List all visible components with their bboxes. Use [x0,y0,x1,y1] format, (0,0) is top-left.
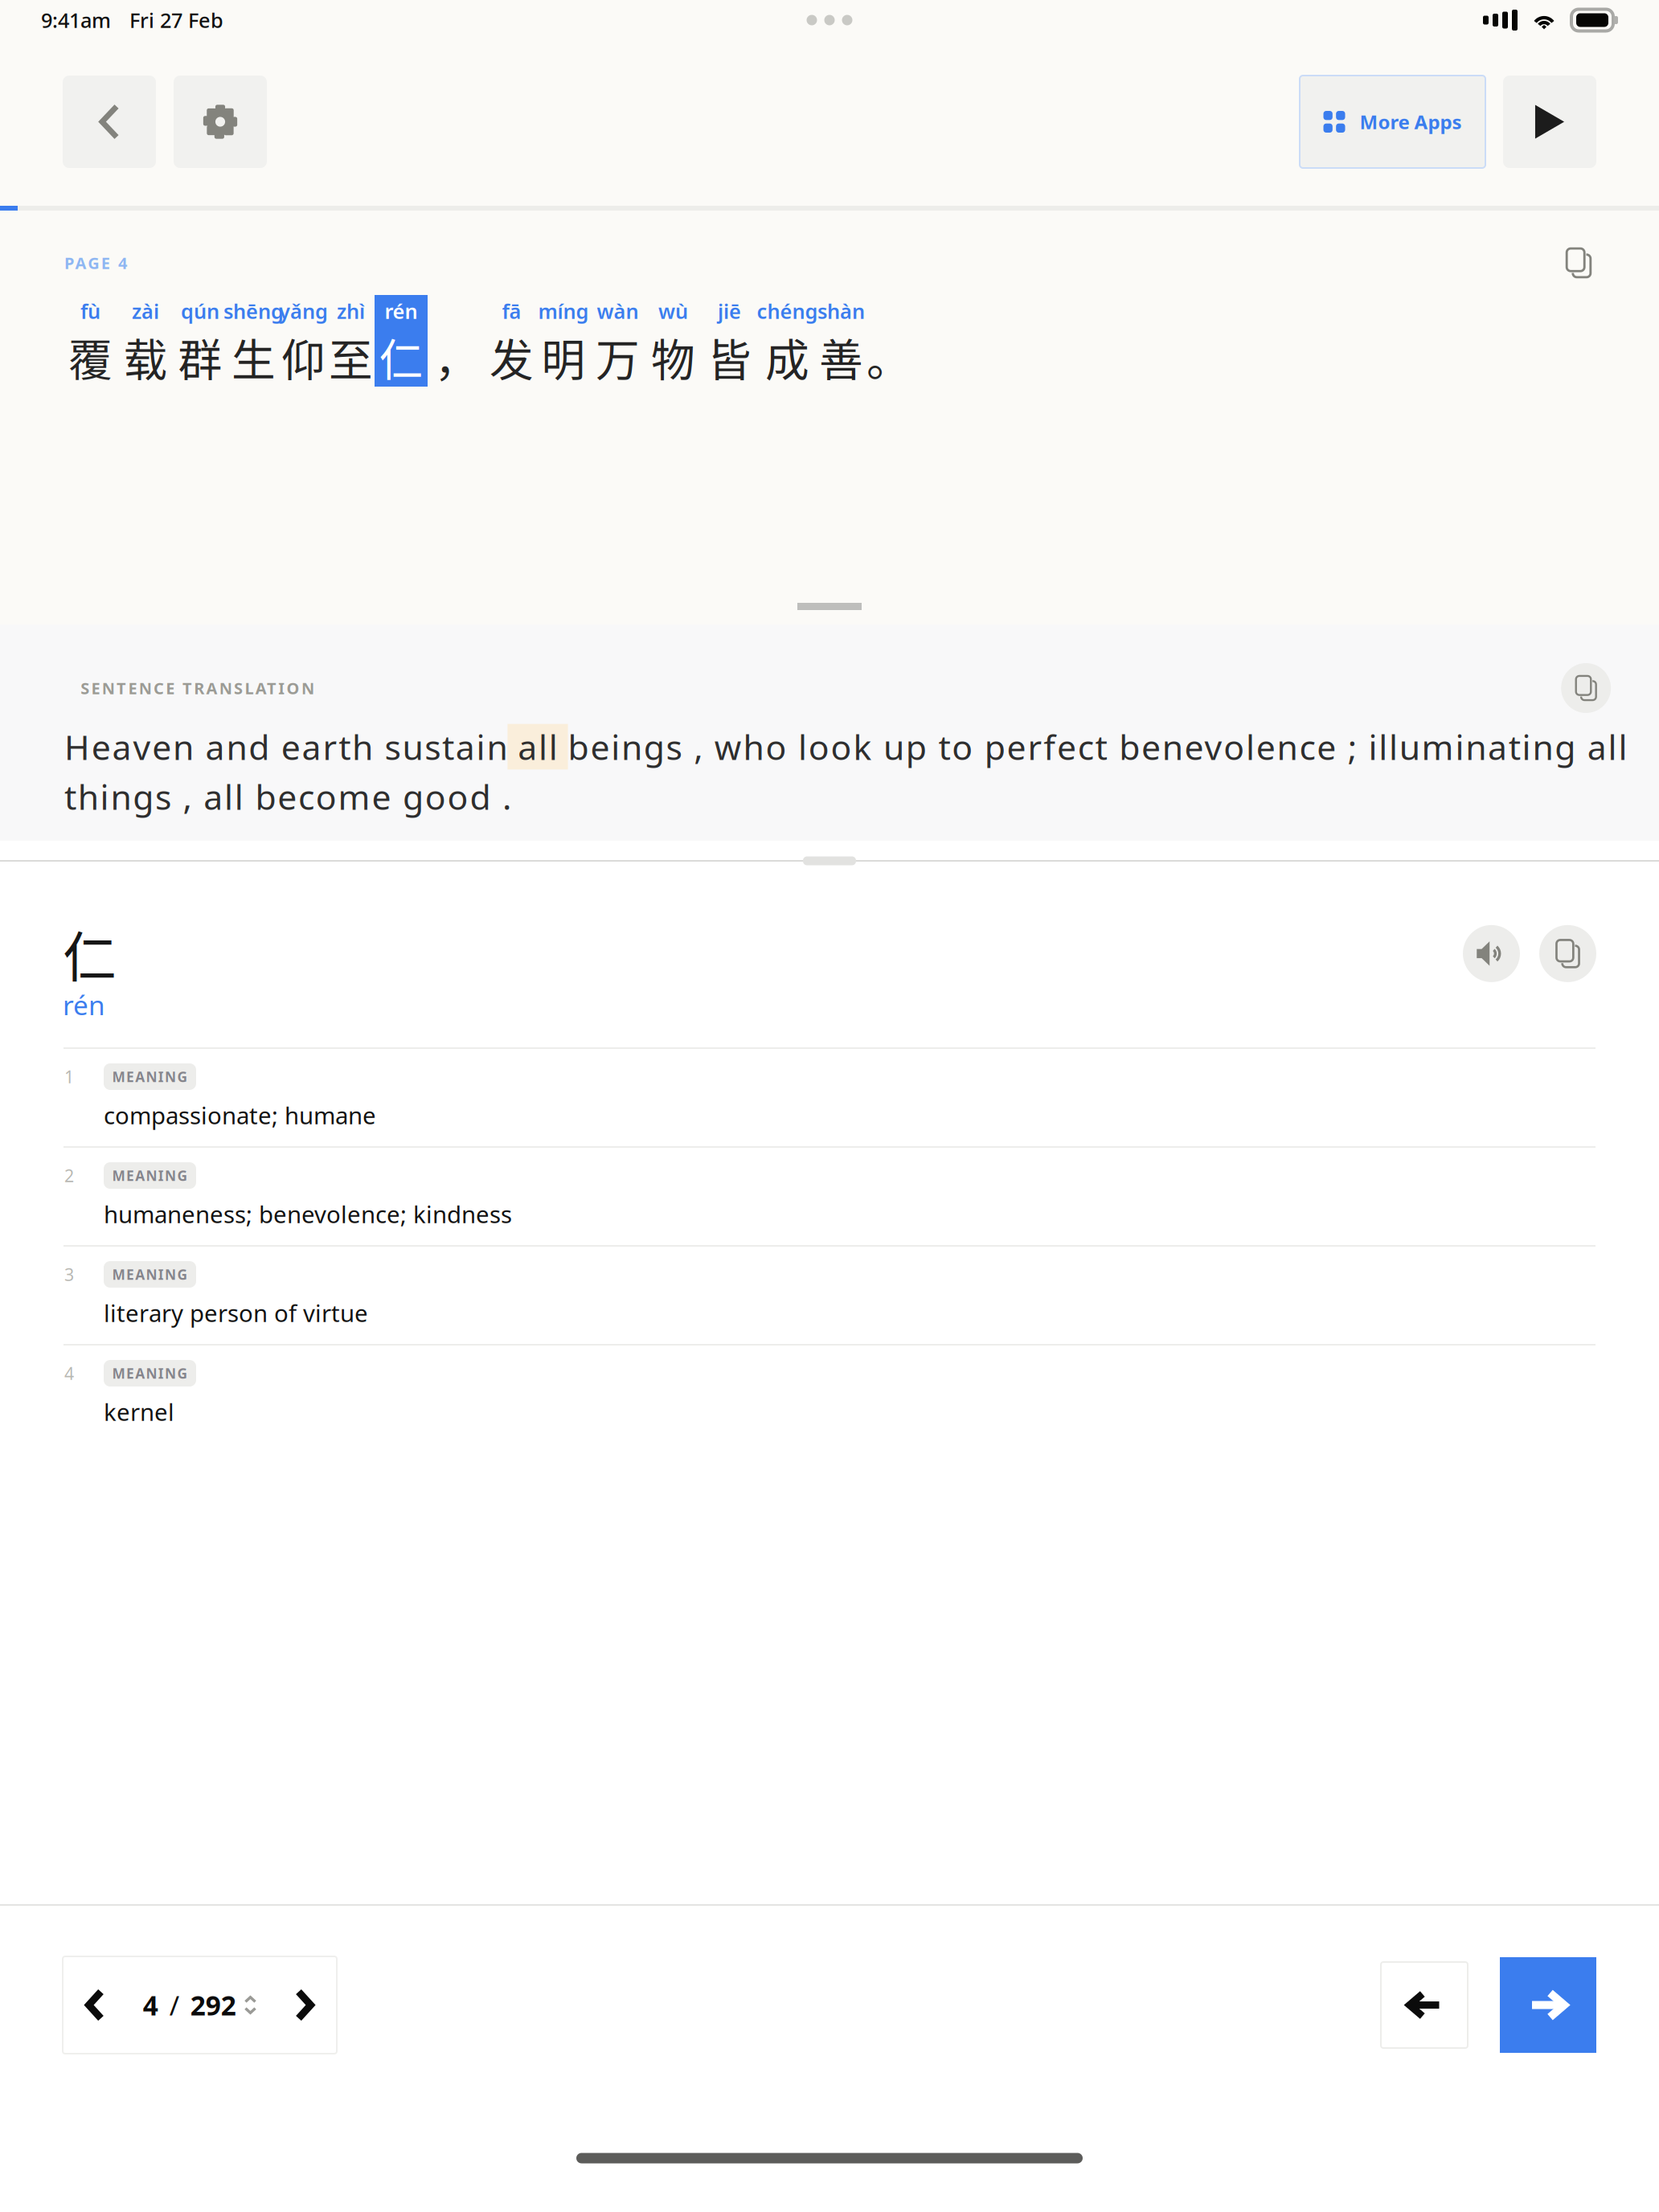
staticText: beings , who look up to perfect benevole… [568,724,1627,770]
staticText: yǎng [279,298,328,325]
staticText: 仁 [379,325,423,389]
staticText: zài [132,298,159,325]
staticText: jiē [718,298,741,325]
staticText: MEANING [112,1265,188,1284]
staticText: literary person of virtue [104,1297,368,1329]
staticText: 。 [866,325,911,389]
staticText: 生 [231,325,276,389]
staticText: shēng [223,298,284,325]
button[interactable]: Play [1503,76,1596,168]
staticText: 9:41am [41,7,111,34]
staticText: shàn [817,298,865,325]
staticText: MEANING [112,1067,188,1086]
staticText: míng [538,298,589,325]
staticText: SENTENCE TRANSLATION [81,677,314,699]
staticText: rén [385,298,418,325]
button[interactable]: Previous [1381,1962,1468,2048]
staticText: 仰 [281,325,326,389]
button[interactable]: Play pronunciation [1463,925,1520,982]
button[interactable]: More Apps [1300,76,1485,168]
staticText: fù [80,298,100,325]
button[interactable]: Back [63,76,156,168]
staticText: Heaven and earth sustain [64,724,508,770]
staticText: More Apps [1360,109,1462,135]
staticText: wù [658,298,688,325]
staticText: 明 [541,325,586,389]
staticText: 发 [490,325,534,389]
staticText: 万 [596,325,640,389]
staticText: kernel [104,1396,174,1428]
staticText: zhì [337,298,365,325]
staticText: all [508,724,568,770]
staticText: 3 [64,1263,74,1286]
staticText: / [169,1987,179,2023]
staticText: 覆 [68,325,113,389]
staticText: ， [434,325,479,389]
staticText: rén [63,987,105,1023]
staticText: 2 [64,1164,74,1187]
button[interactable]: Copy translation [1561,663,1611,713]
staticText: PAGE 4 [64,252,127,274]
staticText: humaneness; benevolence; kindness [104,1198,512,1230]
button[interactable]: Settings [174,76,267,168]
staticText: compassionate; humane [104,1100,376,1131]
staticText: 载 [123,325,168,389]
staticText: fā [502,298,521,325]
staticText: 仁 [63,915,117,992]
staticText: things , all become good . [64,774,511,819]
staticText: qún [181,298,219,325]
staticText: 皆 [707,325,752,389]
staticText: chéng [757,298,818,325]
staticText: 至 [329,325,373,389]
button[interactable]: 4 [63,1956,337,2054]
staticText: 292 [190,1987,236,2023]
button[interactable]: Next [1500,1957,1596,2053]
button[interactable]: Copy character [1539,925,1596,982]
staticText: wàn [597,298,639,325]
staticText: 成 [765,325,809,389]
staticText: 物 [651,325,695,389]
button[interactable]: Copy sentence [1561,245,1596,281]
staticText: Fri 27 Feb [129,7,223,34]
staticText: 1 [64,1065,74,1088]
staticText: 4 [64,1362,74,1385]
staticText: 群 [178,325,222,389]
staticText: 善 [819,325,863,389]
staticText: MEANING [112,1166,188,1185]
staticText: 4 [143,1987,158,2023]
staticText: MEANING [112,1364,188,1382]
